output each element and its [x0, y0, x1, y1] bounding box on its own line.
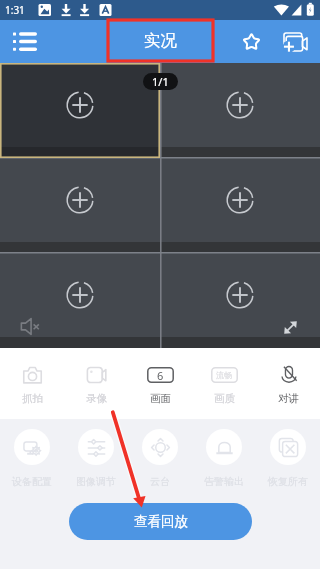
button[interactable]: 设备配置	[0, 425, 64, 501]
staticText: 画质	[214, 392, 235, 405]
button[interactable]: 图像调节	[64, 425, 128, 501]
button[interactable]: Camera window	[0, 63, 160, 158]
button[interactable]: 6	[128, 348, 192, 419]
button[interactable]: 实况	[108, 20, 213, 61]
button[interactable]: Favorites	[229, 20, 273, 63]
button[interactable]: 流畅	[192, 348, 256, 419]
button[interactable]: Camera window	[160, 253, 320, 348]
button[interactable]: Add camera	[273, 20, 317, 63]
button[interactable]: Menu	[0, 20, 50, 63]
staticText: 录像	[86, 392, 107, 405]
staticText: 流畅	[216, 370, 232, 380]
staticText: 恢复所有	[268, 475, 308, 488]
button[interactable]: 告警输出	[192, 425, 256, 501]
button[interactable]: 录像	[64, 348, 128, 419]
button[interactable]: Camera window	[160, 63, 320, 158]
button[interactable]: Camera window	[160, 158, 320, 253]
staticText: 6	[157, 368, 164, 383]
staticText: 告警输出	[204, 475, 244, 488]
staticText: 云台	[150, 475, 170, 488]
button[interactable]: Camera window	[0, 253, 160, 348]
staticText: 1/1	[152, 74, 169, 89]
staticText: 抓拍	[22, 392, 43, 405]
button[interactable]: Camera window	[0, 158, 160, 253]
button[interactable]: 查看回放	[69, 503, 252, 540]
staticText: 查看回放	[134, 513, 188, 530]
staticText: 对讲	[278, 392, 299, 405]
button[interactable]: 对讲	[256, 348, 320, 419]
staticText: 实况	[144, 30, 177, 51]
staticText: 1:31	[5, 3, 25, 17]
staticText: 图像调节	[76, 475, 116, 488]
staticText: 画面	[150, 392, 171, 405]
staticText: 设备配置	[12, 475, 52, 488]
button[interactable]: 恢复所有	[256, 425, 320, 501]
button[interactable]: 抓拍	[0, 348, 64, 419]
button[interactable]: 云台	[128, 425, 192, 501]
